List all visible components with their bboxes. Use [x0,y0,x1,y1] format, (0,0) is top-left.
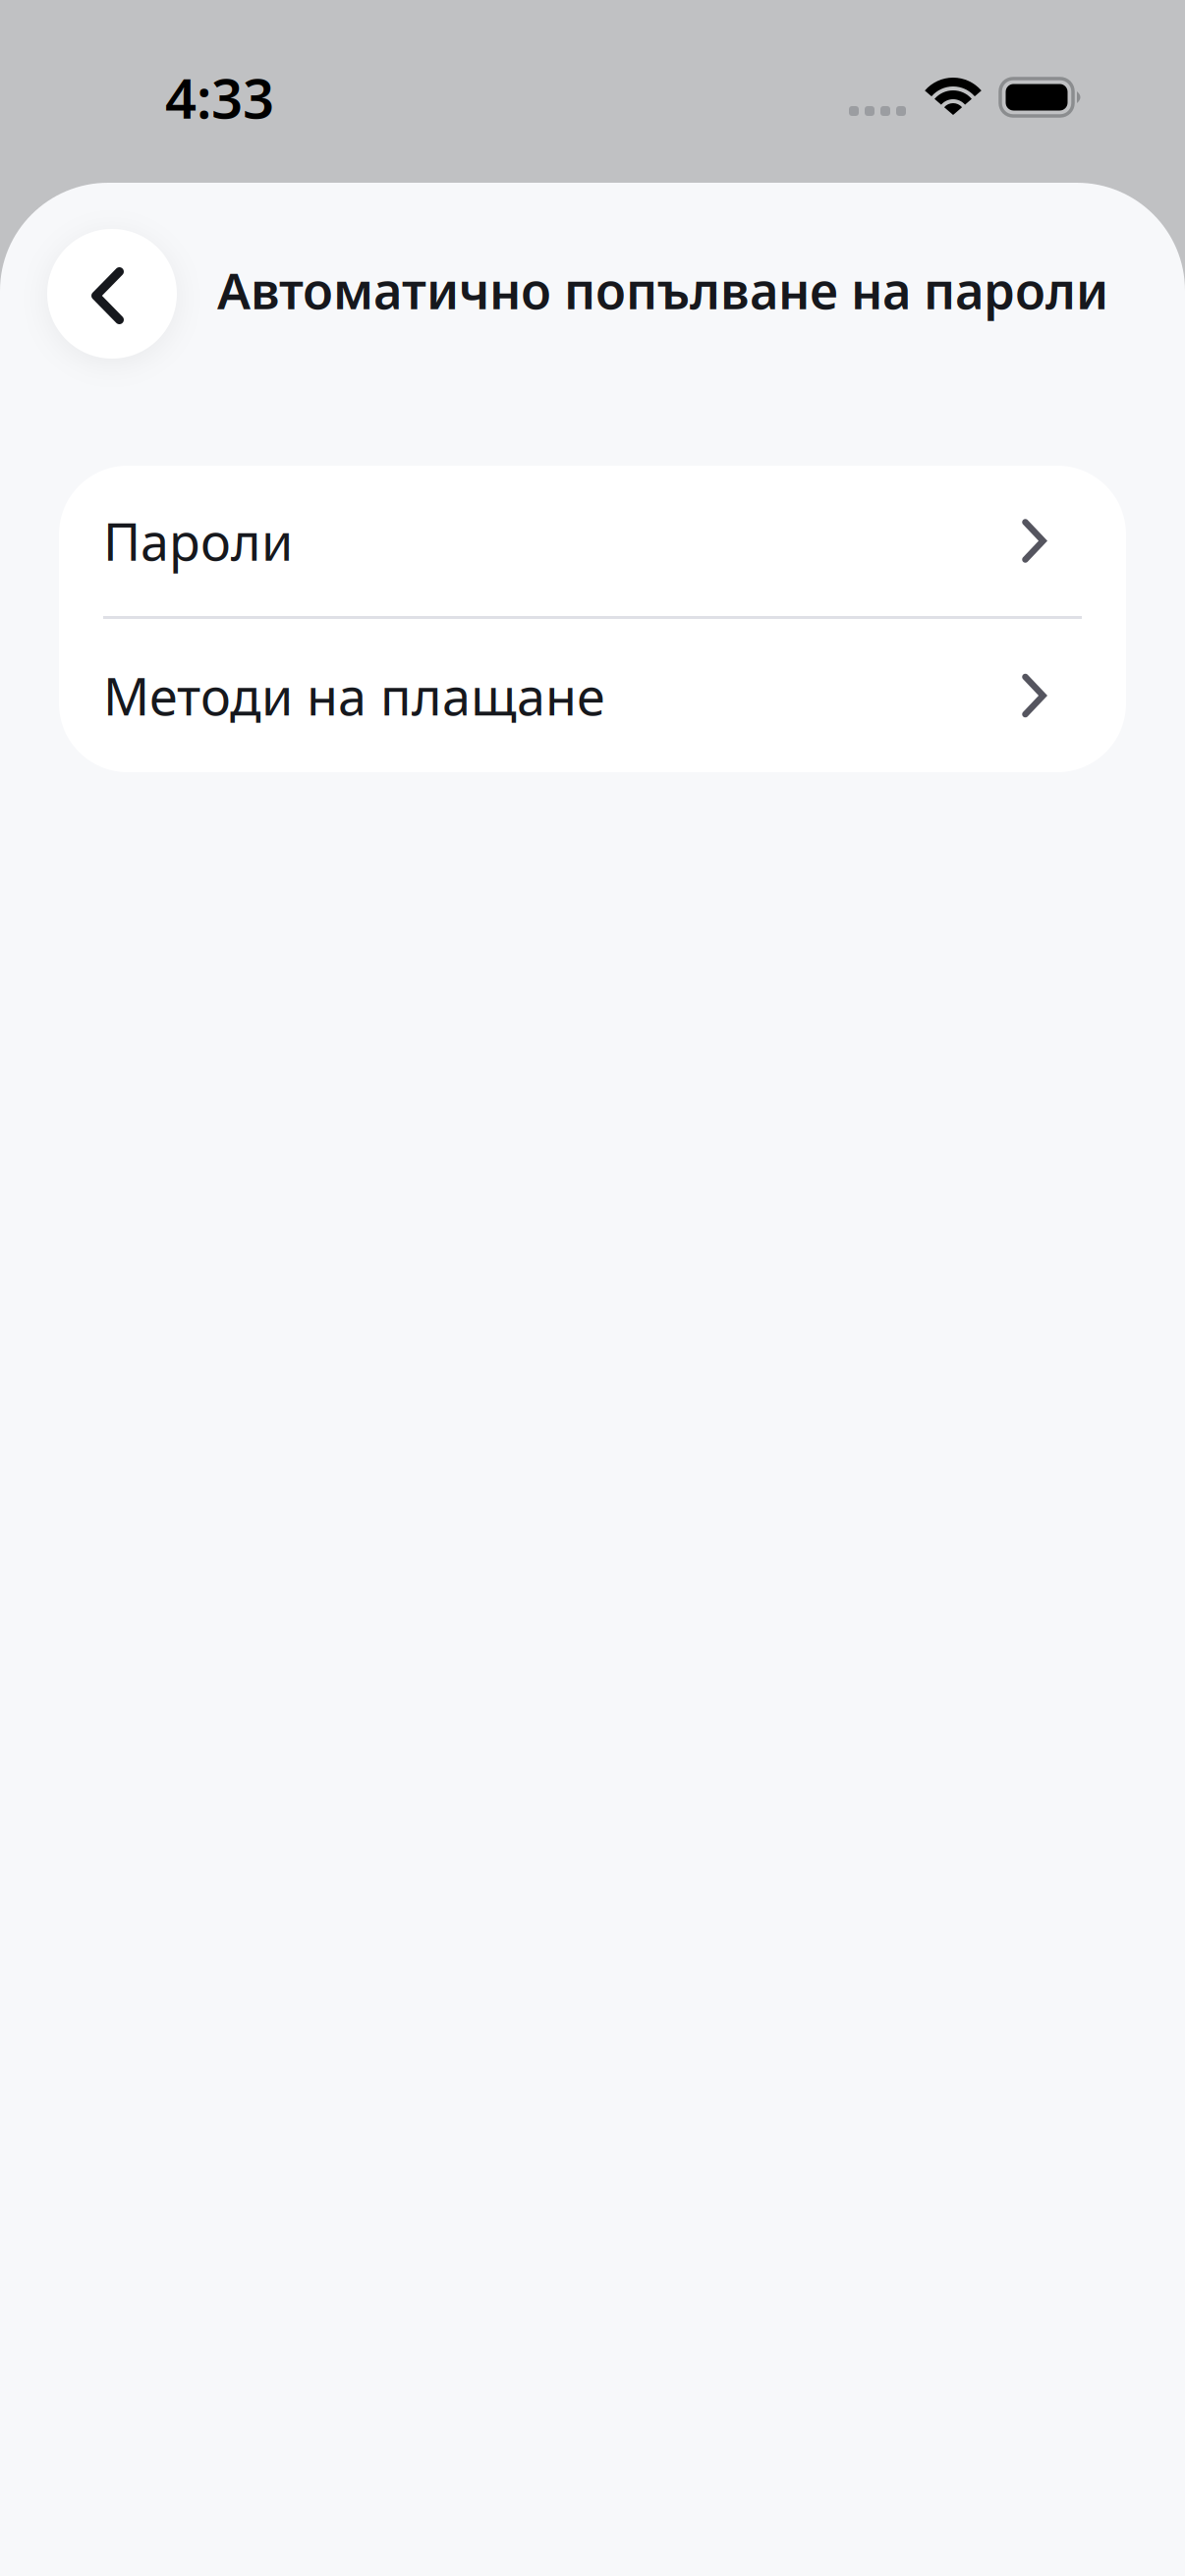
staticText: Пароли [103,507,293,575]
staticText: Методи на плащане [103,662,605,730]
button[interactable]: Методи на плащане [59,619,1126,772]
button[interactable]: Пароли [59,466,1126,616]
button[interactable]: Back [47,229,177,359]
staticText: Автоматично попълване на пароли [217,257,1108,323]
staticText: 4:33 [165,61,274,134]
